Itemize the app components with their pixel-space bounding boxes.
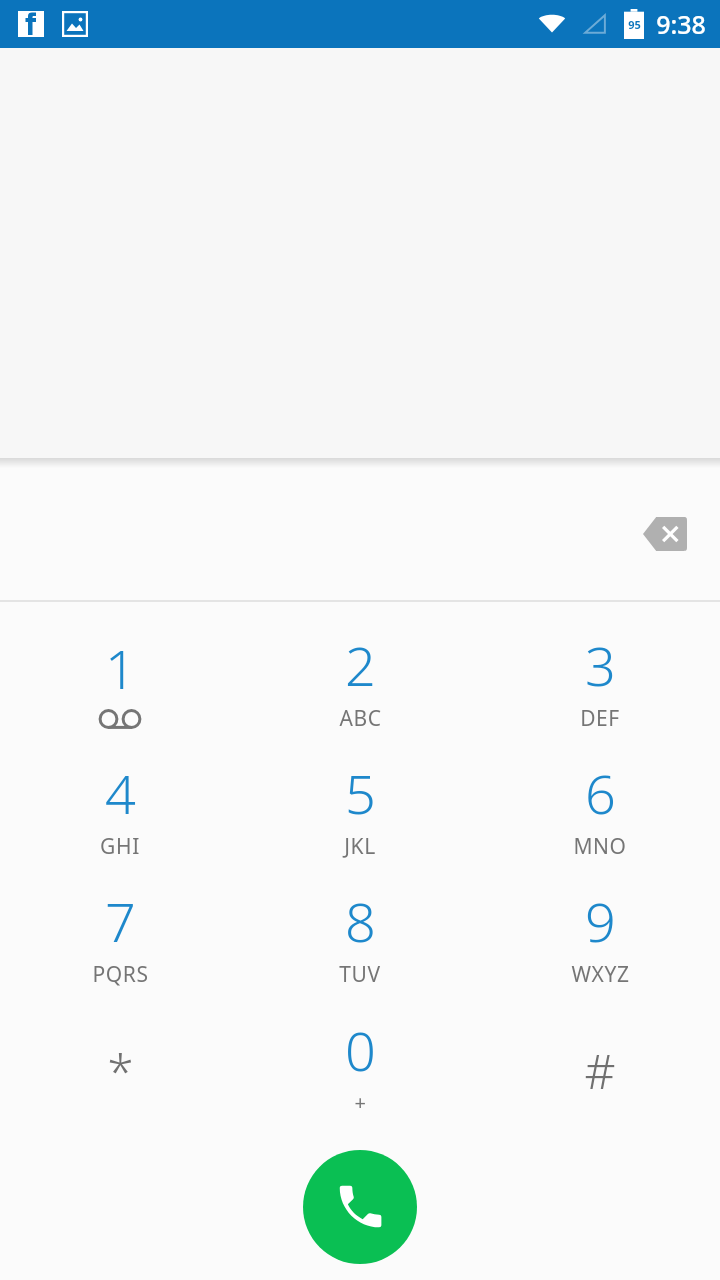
button[interactable]: 5 <box>240 748 480 876</box>
staticText: # <box>584 1038 616 1103</box>
staticText: 4 <box>105 756 136 830</box>
staticText: 9 <box>585 884 616 958</box>
staticText: 6 <box>585 756 616 830</box>
staticText: JKL <box>344 832 376 861</box>
button[interactable]: Delete <box>628 497 702 571</box>
staticText: 2 <box>345 628 376 702</box>
staticText: 3 <box>585 628 616 702</box>
button[interactable]: 8 <box>240 876 480 1004</box>
staticText: DEF <box>580 704 620 733</box>
button[interactable]: 0 <box>240 1004 480 1132</box>
staticText: 1 <box>105 631 136 705</box>
staticText: MNO <box>573 832 627 861</box>
staticText: 95 <box>628 17 641 32</box>
button[interactable]: 9 <box>480 876 720 1004</box>
button[interactable]: 4 <box>0 748 240 876</box>
button[interactable]: 7 <box>0 876 240 1004</box>
staticText: TUV <box>339 960 381 989</box>
button[interactable]: 3 <box>480 620 720 748</box>
staticText: 0 <box>345 1013 376 1087</box>
staticText: 7 <box>105 884 136 958</box>
staticText: + <box>354 1089 367 1116</box>
staticText: 5 <box>345 756 376 830</box>
button[interactable]: # <box>480 1004 720 1132</box>
staticText: ABC <box>339 704 382 733</box>
button[interactable]: Call <box>303 1150 417 1264</box>
button[interactable]: 6 <box>480 748 720 876</box>
button[interactable]: 2 <box>240 620 480 748</box>
staticText: GHI <box>100 832 140 861</box>
staticText: 9:38 <box>656 7 706 41</box>
staticText: PQRS <box>92 960 149 989</box>
staticText: 8 <box>345 884 376 958</box>
button[interactable]: * <box>0 1004 240 1132</box>
staticText: * <box>107 1038 134 1103</box>
button[interactable]: 1 <box>0 620 240 748</box>
staticText: WXYZ <box>571 960 630 989</box>
